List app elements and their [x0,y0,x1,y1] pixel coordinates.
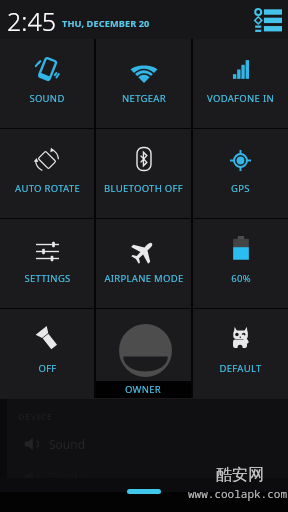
staticText: OFF [38,362,57,375]
button[interactable]: Settings [248,0,282,39]
staticText: 2:45 [7,4,56,38]
button[interactable]: 60% [193,219,288,308]
button[interactable]: DEFAULT [193,309,288,398]
staticText: 酷安网 [216,465,264,485]
staticText: 60% [231,272,251,285]
button[interactable]: OFF [0,309,94,398]
button[interactable]: SOUND [0,39,94,128]
staticText: OWNER [125,383,162,396]
button[interactable]: BLUETOOTH OFF [96,129,191,218]
staticText: AIRPLANE MODE [104,272,184,285]
button[interactable]: NETGEAR [96,39,191,128]
button[interactable]: SETTINGS [0,219,94,308]
staticText: VODAFONE IN [207,92,274,105]
button[interactable]: AIRPLANE MODE [96,219,191,308]
staticText: SOUND [29,92,65,105]
staticText: Sound [49,436,86,452]
staticText: DEFAULT [219,362,262,375]
button[interactable]: OWNER [96,309,191,398]
staticText: NETGEAR [122,92,166,105]
staticText: GPS [231,182,250,195]
staticText: THU, DECEMBER 20 [62,17,150,30]
staticText: AUTO ROTATE [15,182,80,195]
staticText: www.coolapk.com [188,486,287,501]
button[interactable]: Drag handle [127,489,161,494]
button[interactable]: AUTO ROTATE [0,129,94,218]
staticText: BLUETOOTH OFF [104,182,183,195]
staticText: DEVICE [18,410,53,422]
button[interactable]: VODAFONE IN [193,39,288,128]
button[interactable]: GPS [193,129,288,218]
staticText: SETTINGS [24,272,71,285]
